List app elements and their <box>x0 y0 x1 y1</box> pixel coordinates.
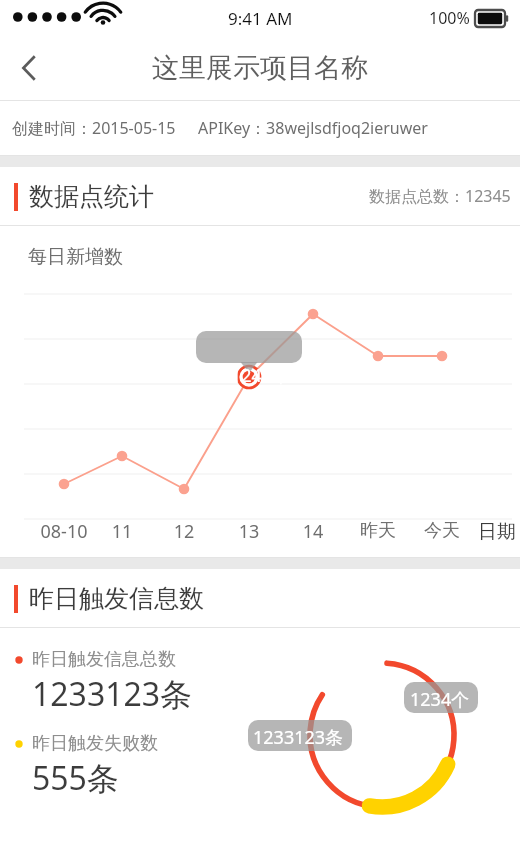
staticText: 昨天 <box>348 519 408 542</box>
staticText: 100% <box>429 7 470 29</box>
staticText: 1233123条 <box>253 725 344 750</box>
staticText: 每日新增数 <box>28 245 123 269</box>
staticText: 11 <box>92 519 152 544</box>
staticText: 13 <box>219 519 279 544</box>
staticText: APIKey：38wejlsdfjoq2ieruwer <box>198 117 428 139</box>
staticText: 12 <box>154 519 214 544</box>
staticText: 数据点总数：12345 <box>369 185 511 207</box>
staticText: 日期 <box>478 520 516 544</box>
staticText: 昨日触发信息总数 <box>32 648 176 671</box>
staticText: 昨日触发信息数 <box>29 583 204 614</box>
staticText: 555条 <box>32 756 119 800</box>
staticText: 1231246个 <box>200 363 291 388</box>
staticText: 创建时间：2015-05-15 <box>12 117 176 139</box>
staticText: 08-10 <box>34 519 94 544</box>
staticText: 14 <box>283 519 343 544</box>
staticText: 1234个 <box>410 687 470 712</box>
staticText: 昨日触发失败数 <box>32 732 158 755</box>
staticText: 这里展示项目名称 <box>152 51 368 85</box>
staticText: 今天 <box>412 519 472 542</box>
staticText: 9:41 AM <box>228 7 293 30</box>
staticText: 1233123条 <box>32 672 193 716</box>
button[interactable]: Back <box>0 39 58 97</box>
staticText: 数据点统计 <box>29 181 154 212</box>
